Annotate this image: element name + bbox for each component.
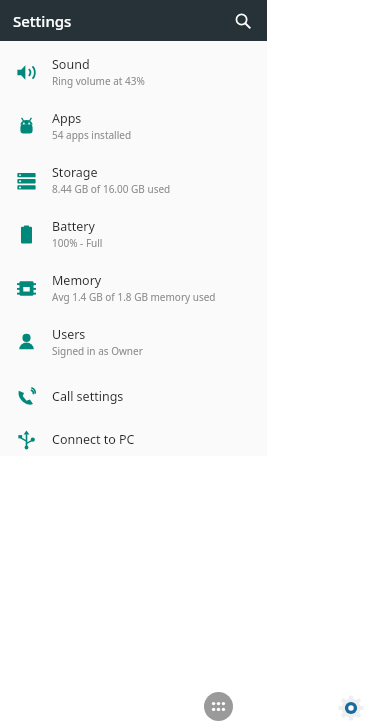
button[interactable]: Memory xyxy=(0,261,267,315)
staticText: Sound xyxy=(52,56,90,73)
staticText: Avg 1.4 GB of 1.8 GB memory used xyxy=(52,290,216,304)
staticText: Call settings xyxy=(52,388,124,405)
staticText: Battery xyxy=(52,218,95,235)
button[interactable]: Search xyxy=(226,4,260,38)
staticText: Apps xyxy=(52,110,82,127)
staticText: Storage xyxy=(52,164,98,181)
button[interactable]: All apps xyxy=(204,692,233,721)
staticText: Signed in as Owner xyxy=(52,344,143,358)
staticText: Ring volume at 43% xyxy=(52,74,145,88)
button[interactable]: Connect to PC xyxy=(0,423,267,456)
button[interactable]: Storage xyxy=(0,153,267,207)
staticText: 54 apps installed xyxy=(52,128,132,142)
staticText: 8.44 GB of 16.00 GB used xyxy=(52,182,171,196)
button[interactable]: Users xyxy=(0,315,267,369)
staticText: Users xyxy=(52,326,86,343)
staticText: Connect to PC xyxy=(52,431,135,448)
button[interactable]: Call settings xyxy=(0,369,267,423)
button[interactable]: Battery xyxy=(0,207,267,261)
staticText: Memory xyxy=(52,272,102,289)
staticText: 100% - Full xyxy=(52,236,103,250)
staticText: Settings xyxy=(13,11,72,31)
button[interactable]: Apps xyxy=(0,99,267,153)
button[interactable]: Settings xyxy=(338,695,364,721)
button[interactable]: Sound xyxy=(0,45,267,99)
